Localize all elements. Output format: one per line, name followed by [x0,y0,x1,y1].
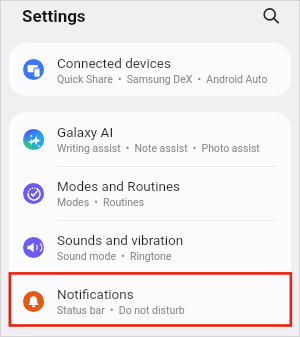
staticText: Galaxy AI [57,124,114,140]
staticText: Quick Share • Samsung DeX • Android Auto [57,73,268,85]
staticText: Connected devices [57,55,171,71]
button[interactable]: Galaxy AI [9,112,291,166]
staticText: Modes and Routines [57,178,181,194]
button[interactable]: Connected devices [9,43,291,96]
staticText: Sounds and vibration [57,232,184,248]
staticText: Modes • Routines [57,196,145,208]
button[interactable]: Search [259,4,283,28]
staticText: Notifications [57,286,134,302]
button[interactable]: Notifications [9,274,291,328]
button[interactable]: Modes and Routines [9,166,291,220]
staticText: Settings [22,6,86,26]
staticText: Writing assist • Note assist • Photo ass… [57,142,260,154]
staticText: Status bar • Do not disturb [57,304,185,316]
staticText: Sound mode • Ringtone [57,250,172,262]
button[interactable]: Sounds and vibration [9,220,291,274]
